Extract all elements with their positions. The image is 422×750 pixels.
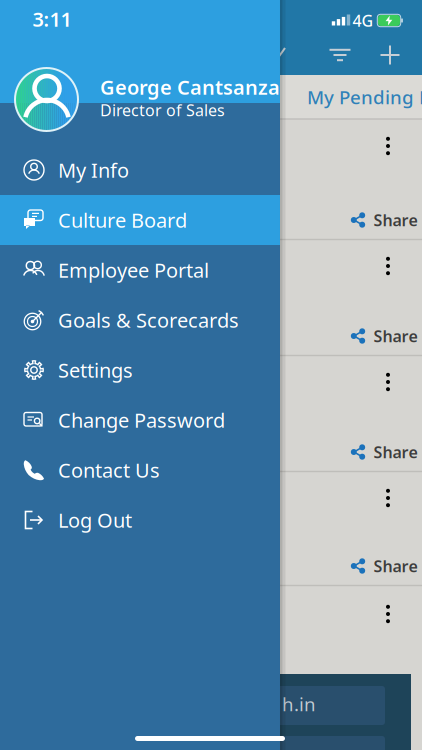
staticText: Director of Sales (100, 99, 225, 121)
staticText: 3:11 (32, 6, 71, 32)
button[interactable]: Share (350, 555, 417, 577)
staticText: Contact Us (58, 457, 160, 483)
button[interactable]: Goals & Scorecards (0, 295, 280, 345)
button[interactable]: My Info (0, 145, 280, 195)
staticText: 4G (352, 10, 373, 31)
staticText: Goals & Scorecards (58, 307, 239, 333)
button[interactable]: Change Password (0, 395, 280, 445)
staticText: Change Password (58, 407, 225, 433)
button[interactable]: Share (350, 209, 417, 231)
button[interactable]: Add (380, 45, 399, 64)
button[interactable]: Share (350, 325, 417, 347)
staticText: Share (373, 555, 417, 577)
staticText: Share (373, 441, 417, 463)
button[interactable]: Culture Board (0, 195, 280, 245)
staticText: George Cantsanza (100, 74, 280, 100)
button[interactable]: Share (350, 441, 417, 463)
staticText: Share (373, 325, 417, 347)
button[interactable]: Filter (329, 49, 350, 61)
button[interactable]: More options (373, 367, 403, 397)
staticText: Settings (58, 357, 133, 383)
button[interactable]: Employee Portal (0, 245, 280, 295)
staticText: Culture Board (58, 207, 187, 233)
button[interactable]: Done (268, 47, 286, 63)
button[interactable]: More options (373, 483, 403, 513)
staticText: h.in (282, 692, 316, 716)
staticText: My Info (58, 157, 129, 183)
button[interactable]: More options (373, 251, 403, 281)
staticText: Employee Portal (58, 257, 209, 283)
button[interactable]: More options (373, 131, 403, 161)
button[interactable]: Log Out (0, 495, 280, 545)
button[interactable]: Settings (0, 345, 280, 395)
staticText: Log Out (58, 507, 132, 533)
staticText: My Pending Feedbacks (307, 85, 422, 109)
staticText: Share (373, 209, 417, 231)
button[interactable]: Contact Us (0, 445, 280, 495)
button[interactable]: More options (373, 599, 403, 629)
